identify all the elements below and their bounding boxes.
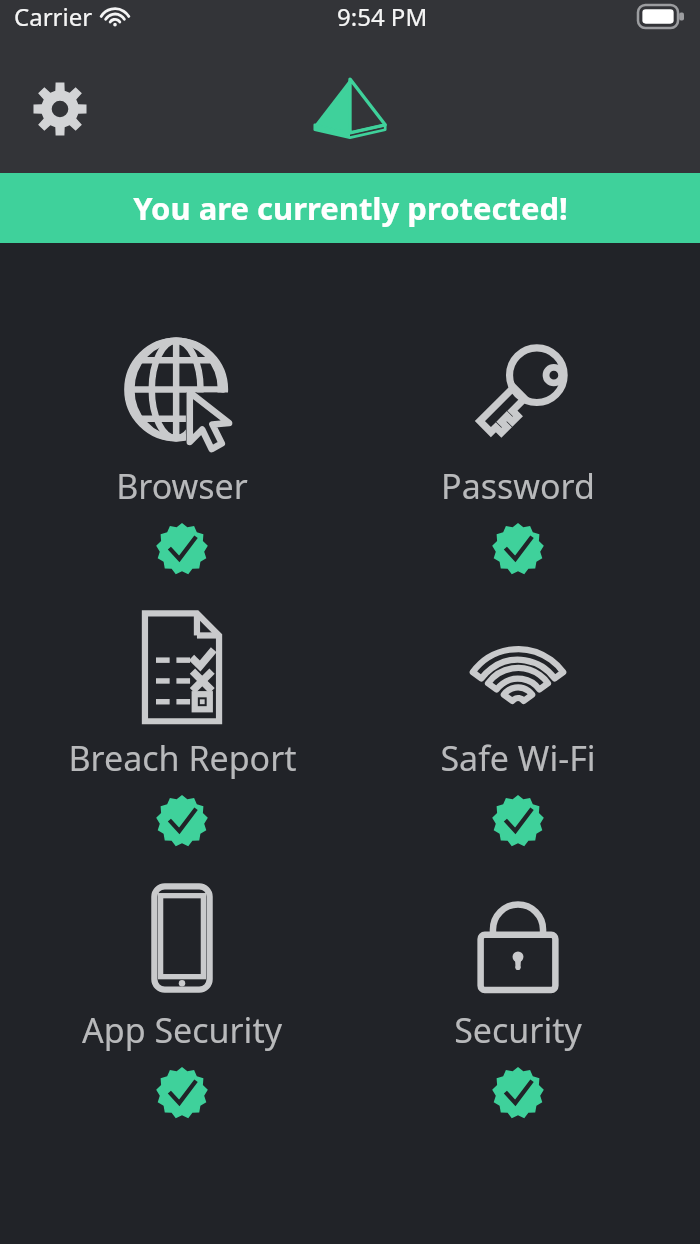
button[interactable]: Settings bbox=[28, 77, 92, 141]
button[interactable]: Security bbox=[363, 873, 673, 1119]
button[interactable]: Password bbox=[363, 329, 673, 575]
staticText: Password bbox=[441, 463, 595, 509]
button[interactable]: Breach Report bbox=[27, 601, 337, 847]
staticText: Breach Report bbox=[68, 735, 297, 781]
button[interactable]: Browser bbox=[27, 329, 337, 575]
staticText: 9:54 PM bbox=[337, 0, 428, 33]
staticText: Browser bbox=[116, 463, 248, 509]
button[interactable]: Safe Wi-Fi bbox=[363, 601, 673, 847]
staticText: Safe Wi-Fi bbox=[440, 735, 596, 781]
staticText: App Security bbox=[82, 1007, 282, 1053]
staticText: Carrier bbox=[14, 0, 93, 33]
button[interactable]: App Security bbox=[27, 873, 337, 1119]
button[interactable]: You are currently protected! bbox=[0, 173, 700, 243]
staticText: Security bbox=[454, 1007, 582, 1053]
staticText: You are currently protected! bbox=[133, 187, 568, 229]
button[interactable]: App logo bbox=[306, 65, 394, 153]
